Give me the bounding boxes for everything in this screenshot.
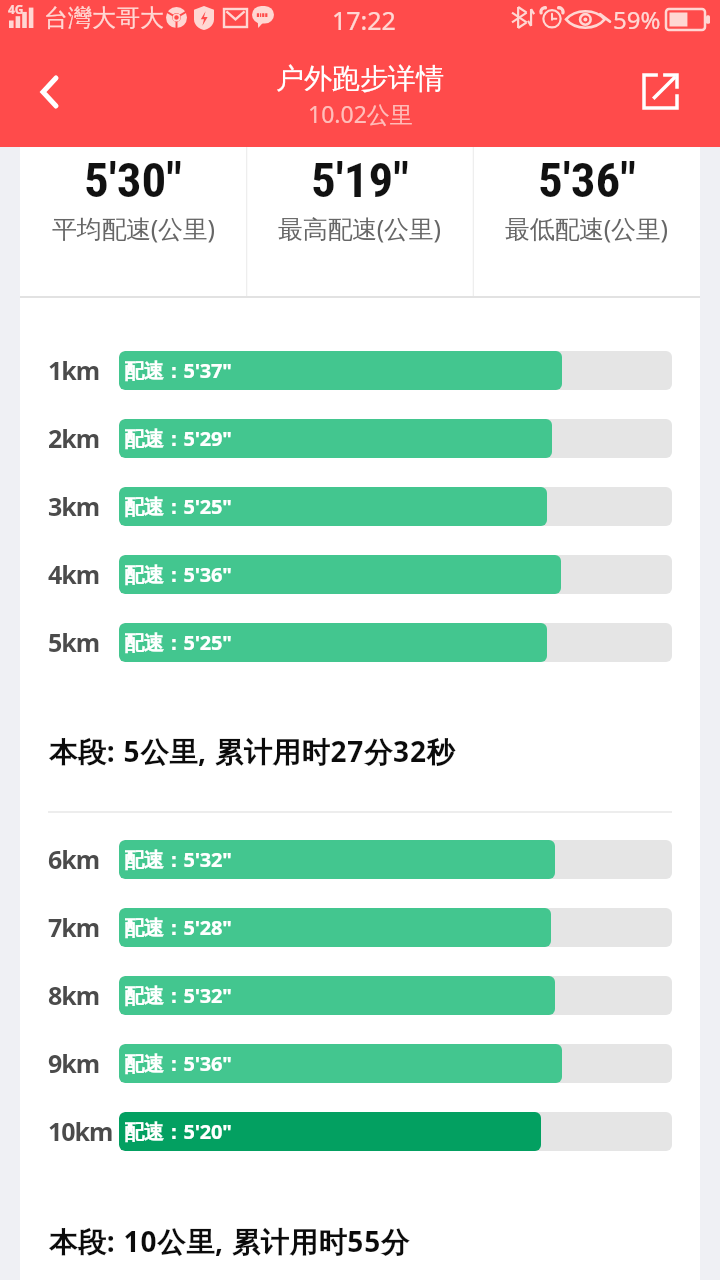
staticText: 平均配速(公里) (52, 211, 215, 245)
button[interactable]: 4km (20, 540, 700, 608)
staticText: 配速：5'25" (124, 493, 232, 520)
button[interactable]: 5'30" (20, 147, 246, 296)
staticText: 7km (48, 910, 100, 944)
staticText: 5'30" (84, 152, 182, 209)
staticText: 10km (48, 1114, 113, 1148)
button[interactable]: Back (21, 64, 77, 120)
staticText: 1km (48, 353, 100, 387)
button[interactable]: 5'19" (246, 147, 473, 296)
staticText: 配速：5'32" (124, 846, 232, 873)
staticText: 10.02公里 (308, 98, 413, 129)
staticText: 17:22 (332, 3, 396, 37)
button[interactable]: 9km (20, 1029, 700, 1097)
staticText: 2km (48, 421, 100, 455)
staticText: 配速：5'29" (124, 425, 232, 452)
button[interactable]: 8km (20, 961, 700, 1029)
staticText: 9km (48, 1046, 100, 1080)
staticText: 台灣大哥大 (44, 3, 164, 33)
staticText: 本段: 10公里, 累计用时55分 (49, 1222, 410, 1260)
staticText: 户外跑步详情 (276, 61, 444, 96)
staticText: 4G (8, 1, 24, 17)
button[interactable]: 1km (20, 336, 700, 404)
button[interactable]: 7km (20, 893, 700, 961)
button[interactable]: Share (632, 63, 688, 119)
staticText: 3km (48, 489, 100, 523)
staticText: 本段: 5公里, 累计用时27分32秒 (49, 732, 456, 770)
staticText: 最高配速(公里) (278, 211, 441, 245)
staticText: 配速：5'36" (124, 561, 232, 588)
staticText: 配速：5'32" (124, 982, 232, 1009)
button[interactable]: 3km (20, 472, 700, 540)
staticText: 5'19" (311, 152, 409, 209)
button[interactable]: 6km (20, 825, 700, 893)
staticText: 配速：5'20" (124, 1118, 232, 1145)
staticText: 4km (48, 557, 100, 591)
staticText: 配速：5'25" (124, 629, 232, 656)
staticText: 8km (48, 978, 100, 1012)
button[interactable]: 5'36" (473, 147, 700, 296)
staticText: 5'36" (538, 152, 636, 209)
button[interactable]: 10km (20, 1097, 700, 1165)
staticText: 配速：5'37" (124, 357, 232, 384)
button[interactable]: 2km (20, 404, 700, 472)
staticText: 5km (48, 625, 100, 659)
staticText: 59% (613, 3, 661, 36)
staticText: 6km (48, 842, 100, 876)
staticText: 最低配速(公里) (505, 211, 668, 245)
button[interactable]: 5km (20, 608, 700, 676)
staticText: 配速：5'36" (124, 1050, 232, 1077)
staticText: 配速：5'28" (124, 914, 232, 941)
